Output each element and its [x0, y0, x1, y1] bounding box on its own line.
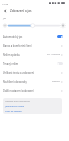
button[interactable]: Automatický jas: [0, 32, 69, 41]
button[interactable]: Vždy na displeji: [5, 110, 22, 113]
staticText: Po 1 minutě: [47, 53, 60, 56]
button[interactable]: Režim spánku: [0, 50, 69, 59]
staticText: Režim spánku: [3, 53, 20, 57]
button[interactable]: Toggle on: [57, 35, 63, 38]
button[interactable]: Další nastavení zobrazení: [0, 86, 69, 95]
button[interactable]: Barva a komfortní čtení: [0, 41, 69, 50]
staticText: Zobrazení a jas: [10, 9, 32, 13]
staticText: Automatický jas: [3, 35, 23, 39]
button[interactable]: Toggle off: [57, 62, 63, 65]
staticText: Barva a komfortní čtení: [3, 44, 32, 48]
staticText: Další nastavení zobrazení: [3, 89, 34, 93]
button[interactable]: Jednoduchý režim: [5, 105, 25, 108]
staticText: Jas: [3, 16, 7, 19]
staticText: Hledáte jiné nastavení?: [5, 100, 30, 103]
button[interactable]: Rozlišení obrazovky: [0, 77, 69, 86]
staticText: 14:25: [2, 2, 9, 5]
staticText: Rozlišení obrazovky: [3, 80, 27, 84]
staticText: Display: [52, 80, 60, 83]
staticText: Velikost textu a zobrazení: [3, 71, 34, 75]
button[interactable]: Tmavý režim: [0, 59, 69, 68]
staticText: Tmavý režim: [3, 62, 19, 66]
button[interactable]: Brightness: [0, 21, 69, 32]
button[interactable]: Velikost textu a zobrazení: [0, 68, 69, 77]
button[interactable]: Back: [1, 7, 9, 15]
